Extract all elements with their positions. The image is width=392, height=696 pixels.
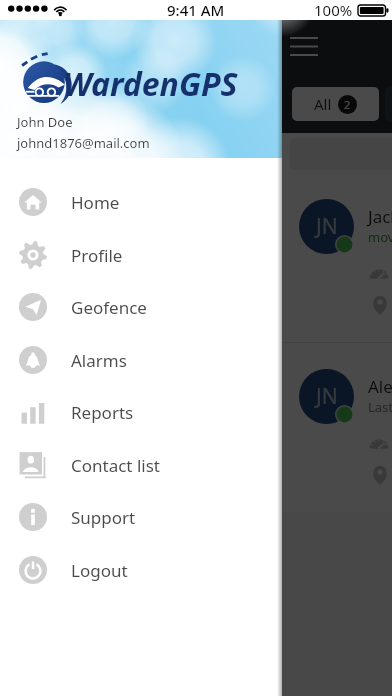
button[interactable]: Geofence — [0, 281, 282, 333]
staticText: moving — [368, 228, 392, 246]
staticText: WardenGPS — [63, 62, 238, 106]
staticText: JN — [316, 382, 338, 411]
staticText: Home — [71, 191, 120, 214]
staticText: Profile — [71, 244, 123, 267]
button[interactable]: Reports — [0, 386, 282, 438]
staticText: Logout — [71, 559, 128, 582]
staticText: Alex Smith — [368, 375, 392, 398]
staticText: All — [314, 94, 332, 114]
button[interactable]: Alarms — [0, 334, 282, 386]
staticText: Contact list — [71, 454, 160, 477]
staticText: Reports — [71, 401, 134, 424]
button[interactable]: Home — [0, 176, 282, 228]
staticText: Alarms — [71, 349, 127, 372]
staticText: Geofence — [71, 296, 147, 319]
staticText: JN — [316, 212, 338, 241]
staticText: 9:41 AM — [167, 0, 225, 20]
staticText: John Doe — [17, 113, 73, 131]
staticText: johnd1876@mail.com — [17, 134, 150, 152]
button[interactable]: JN — [282, 343, 392, 512]
staticText: 100% — [314, 0, 353, 20]
button[interactable]: Support — [0, 491, 282, 543]
staticText: Last update 12:02 — [368, 398, 392, 416]
button[interactable]: Open navigation drawer — [286, 28, 322, 64]
button[interactable]: JN — [282, 173, 392, 342]
button[interactable]: All — [292, 87, 379, 121]
staticText: 2 — [344, 97, 351, 112]
staticText: Support — [71, 506, 136, 529]
button[interactable]: Contact list — [0, 439, 282, 491]
button[interactable]: Logout — [0, 544, 282, 596]
staticText: Jack Newman — [368, 205, 392, 228]
button[interactable]: Profile — [0, 229, 282, 281]
